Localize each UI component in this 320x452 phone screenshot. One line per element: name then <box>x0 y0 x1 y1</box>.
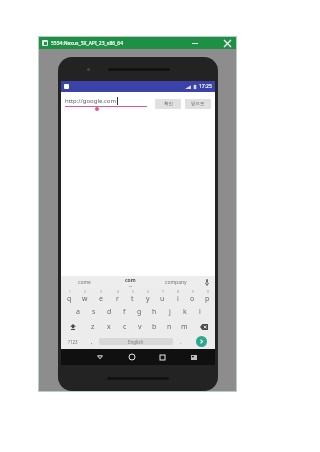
button[interactable]: 4 <box>109 289 125 304</box>
button[interactable]: m <box>177 319 192 334</box>
staticText: come <box>78 279 91 286</box>
staticText: 2 <box>84 290 86 294</box>
staticText: c <box>123 322 127 332</box>
staticText: n <box>167 322 172 332</box>
button[interactable]: b <box>147 319 162 334</box>
staticText: p <box>205 294 210 304</box>
staticText: . <box>180 338 182 346</box>
staticText: a <box>76 307 80 317</box>
button[interactable]: c <box>117 319 132 334</box>
staticText: u <box>160 294 165 304</box>
staticText: s <box>92 307 96 317</box>
staticText: ••• <box>129 285 133 289</box>
button[interactable]: s <box>86 304 102 319</box>
button[interactable]: 1 <box>61 289 77 304</box>
staticText: r <box>116 294 119 304</box>
button[interactable]: 닫으로 <box>185 99 211 109</box>
button[interactable]: 0 <box>200 289 215 304</box>
staticText: company <box>165 279 187 286</box>
staticText: m <box>181 322 188 332</box>
button[interactable]: f <box>117 304 132 319</box>
button[interactable]: 3 <box>93 289 109 304</box>
staticText: d <box>107 307 112 317</box>
staticText: l <box>199 307 201 317</box>
staticText: English <box>128 339 144 345</box>
staticText: e <box>99 294 103 304</box>
staticText: , <box>91 338 93 346</box>
staticText: j <box>169 307 171 317</box>
button[interactable]: Go <box>188 334 215 349</box>
button[interactable]: 7 <box>155 289 170 304</box>
staticText: 6 <box>147 290 149 294</box>
button[interactable]: v <box>132 319 147 334</box>
button[interactable]: come <box>61 276 107 289</box>
button[interactable]: Switch keyboard <box>178 349 209 365</box>
button[interactable]: Backspace <box>192 319 215 334</box>
staticText: v <box>138 322 142 332</box>
staticText: 4 <box>117 290 119 294</box>
button[interactable]: com <box>107 276 153 289</box>
staticText: h <box>152 307 157 317</box>
button[interactable]: 8 <box>170 289 185 304</box>
staticText: 5554:Nexus_5X_API_23_x86_64 <box>51 40 124 47</box>
button[interactable]: , <box>84 334 99 349</box>
button[interactable]: 2 <box>77 289 93 304</box>
staticText: 닫으로 <box>191 101 205 107</box>
staticText: x <box>107 322 111 332</box>
staticText: b <box>152 322 157 332</box>
staticText: 1 <box>69 290 71 294</box>
button[interactable]: g <box>132 304 147 319</box>
button[interactable]: x <box>101 319 117 334</box>
staticText: 9 <box>192 290 194 294</box>
button[interactable]: English <box>99 338 173 345</box>
button[interactable]: l <box>192 304 207 319</box>
staticText: ?123 <box>68 339 78 345</box>
button[interactable]: Minimize <box>186 37 204 49</box>
staticText: com <box>125 277 136 284</box>
staticText: 7 <box>162 290 164 294</box>
staticText: 8 <box>177 290 179 294</box>
staticText: o <box>190 294 195 304</box>
button[interactable]: k <box>177 304 192 319</box>
button[interactable]: n <box>162 319 177 334</box>
staticText: y <box>146 294 150 304</box>
button[interactable]: Voice input <box>199 276 215 289</box>
staticText: i <box>177 294 179 304</box>
staticText: 확인 <box>164 101 173 107</box>
staticText: k <box>183 307 187 317</box>
button[interactable]: 5 <box>125 289 140 304</box>
staticText: 17:25 <box>199 83 212 90</box>
button[interactable]: 9 <box>185 289 200 304</box>
button[interactable]: d <box>102 304 117 319</box>
button[interactable]: Home <box>116 349 147 365</box>
staticText: f <box>123 307 126 317</box>
button[interactable]: a <box>70 304 86 319</box>
button[interactable]: h <box>147 304 162 319</box>
staticText: 3 <box>100 290 102 294</box>
staticText: z <box>91 322 95 332</box>
staticText: 0 <box>207 290 209 294</box>
staticText: t <box>131 294 134 304</box>
button[interactable]: j <box>162 304 177 319</box>
button[interactable]: Recents <box>147 349 178 365</box>
button[interactable]: Close <box>218 37 236 49</box>
button[interactable]: 확인 <box>155 99 181 109</box>
staticText: 5 <box>132 290 134 294</box>
button[interactable]: Back <box>84 349 116 365</box>
button[interactable]: ?123 <box>61 334 84 349</box>
staticText: w <box>82 294 88 304</box>
staticText: g <box>137 307 142 317</box>
button[interactable]: http://google.com <box>65 97 151 111</box>
staticText: q <box>67 294 72 304</box>
button[interactable]: 6 <box>140 289 155 304</box>
button[interactable]: Shift <box>61 319 85 334</box>
button[interactable]: z <box>85 319 101 334</box>
button[interactable]: company <box>153 276 199 289</box>
staticText: http://google.com <box>65 97 117 105</box>
